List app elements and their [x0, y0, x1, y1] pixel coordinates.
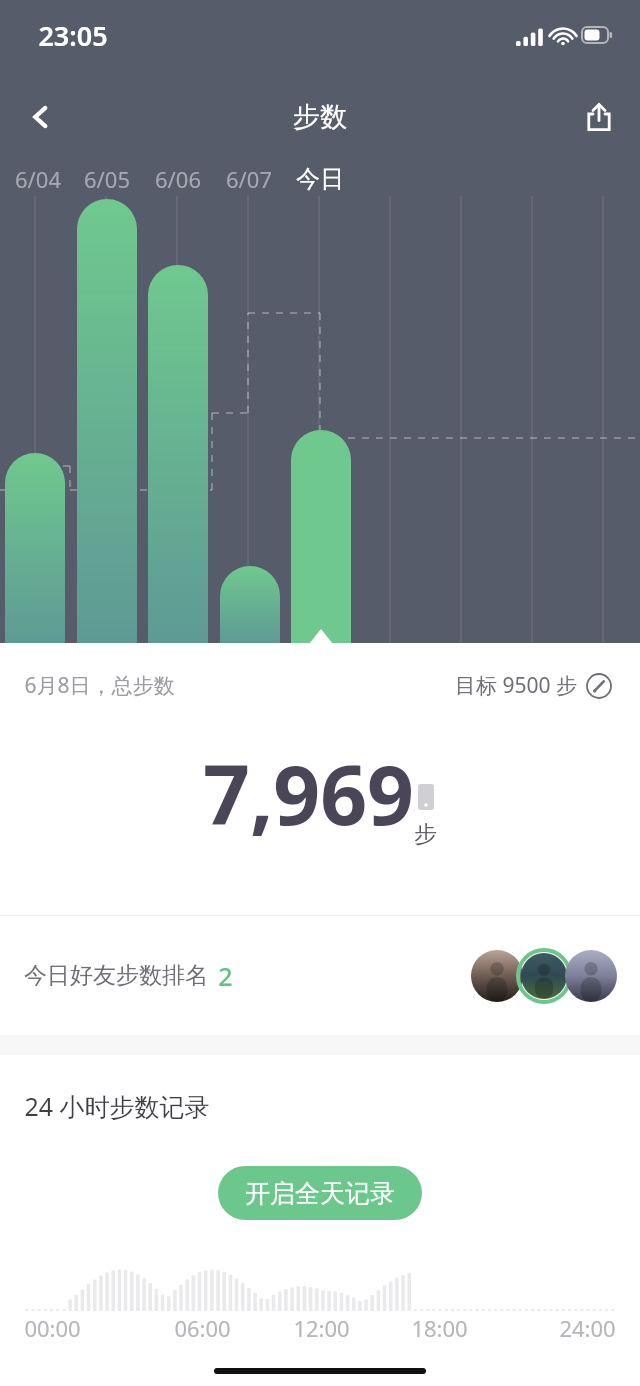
button[interactable]: 开启全天记录: [218, 1166, 422, 1220]
staticText: 00:00: [24, 1313, 81, 1343]
staticText: 7,969: [203, 737, 414, 849]
staticText: 23:05: [38, 17, 108, 54]
staticText: 2: [218, 959, 233, 993]
staticText: 今日: [296, 164, 344, 194]
staticText: 开启全天记录: [245, 1178, 395, 1209]
staticText: 6月8日，总步数: [24, 671, 175, 700]
button[interactable]: Back: [12, 88, 70, 146]
staticText: 步: [414, 820, 437, 849]
staticText: 今日好友步数排名: [24, 961, 208, 990]
staticText: 24 小时步数记录: [24, 1089, 210, 1123]
staticText: 24:00: [559, 1313, 616, 1343]
staticText: 06:00: [174, 1313, 231, 1343]
staticText: 18:00: [411, 1313, 468, 1343]
staticText: 6/06: [155, 164, 201, 194]
staticText: 目标 9500 步: [455, 671, 577, 700]
staticText: 6/05: [84, 164, 130, 194]
button[interactable]: 今日好友步数排名: [0, 916, 640, 1035]
staticText: 步数: [293, 100, 347, 134]
staticText: 12:00: [293, 1313, 350, 1343]
staticText: 6/07: [226, 164, 272, 194]
staticText: 6/04: [15, 164, 61, 194]
button[interactable]: Share: [570, 88, 628, 146]
button[interactable]: 目标 9500 步: [451, 667, 616, 704]
